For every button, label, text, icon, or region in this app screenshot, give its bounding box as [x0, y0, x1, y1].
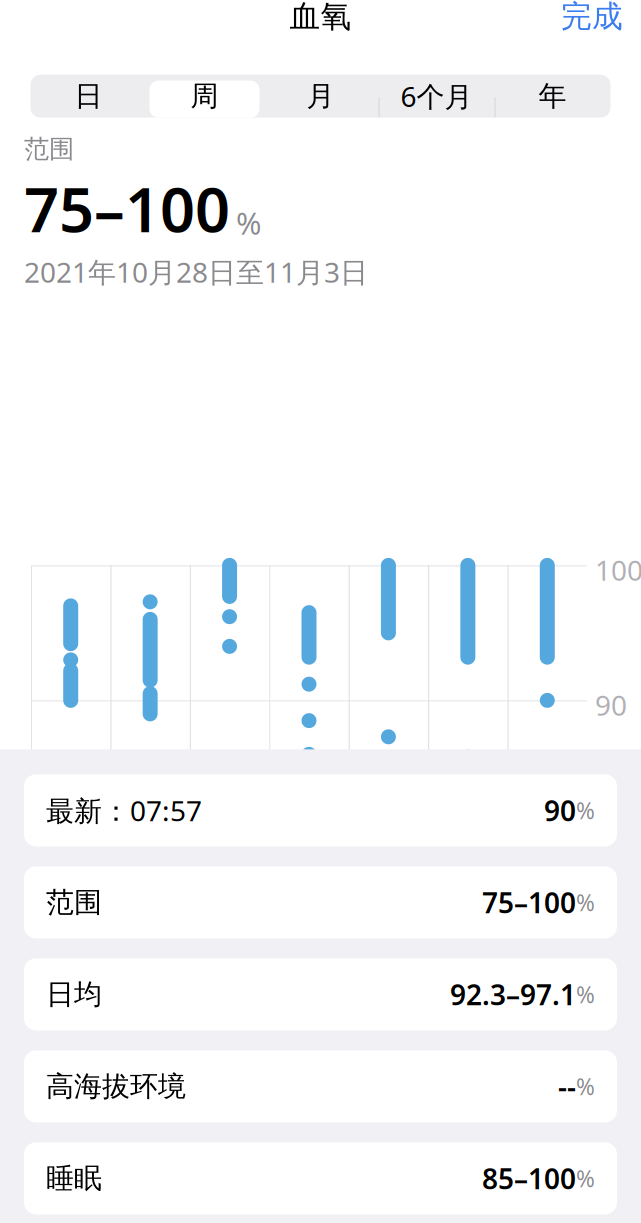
button[interactable]: 睡眠 [24, 1142, 617, 1214]
staticText: 周二 [436, 978, 486, 1009]
button[interactable]: 6个月 [378, 75, 494, 118]
staticText: 75–100 [24, 168, 230, 249]
staticText: 日 [74, 79, 102, 113]
button[interactable]: 范围 [24, 866, 617, 938]
staticText: % [576, 795, 595, 825]
staticText: 最新：07:57 [46, 792, 202, 829]
staticText: -- [558, 1068, 576, 1105]
staticText: % [576, 1071, 595, 1101]
button[interactable]: 周 [146, 75, 262, 118]
staticText: % [576, 887, 595, 917]
staticText: 100 [595, 551, 641, 589]
button[interactable]: 日 [30, 75, 146, 118]
staticText: 90 [595, 686, 627, 724]
staticText: 月 [306, 79, 334, 113]
staticText: 年 [538, 79, 566, 113]
staticText: % [236, 202, 261, 243]
staticText: % [576, 1163, 595, 1193]
staticText: 70 [595, 956, 627, 994]
staticText: 80 [595, 821, 627, 859]
staticText: 85–100 [482, 1160, 576, 1197]
staticText: % [576, 979, 595, 1009]
button[interactable]: 高海拔环境 [24, 1050, 617, 1122]
staticText: 周三 [516, 978, 566, 1009]
staticText: 75–100 [482, 884, 576, 921]
staticText: 周四 [39, 978, 89, 1009]
staticText: 范围 [46, 885, 102, 920]
staticText: 6个月 [400, 77, 472, 115]
staticText: 92.3–97.1 [450, 976, 576, 1013]
staticText: 高海拔环境 [46, 1069, 186, 1104]
button[interactable]: 完成 [543, 0, 641, 45]
staticText: 2021年10月28日至11月3日 [24, 253, 368, 290]
staticText: 日均 [46, 977, 102, 1012]
button[interactable]: 日均 [24, 958, 617, 1030]
staticText: 血氧 [289, 0, 351, 35]
button[interactable]: 月 [262, 75, 378, 118]
staticText: 90 [544, 792, 576, 829]
staticText: 睡眠 [46, 1161, 102, 1196]
staticText: 范围 [24, 134, 74, 165]
button[interactable]: 最新：07:57 [24, 774, 617, 846]
staticText: 周 [190, 79, 218, 113]
button[interactable]: 年 [494, 75, 610, 118]
staticText: 完成 [561, 0, 623, 35]
